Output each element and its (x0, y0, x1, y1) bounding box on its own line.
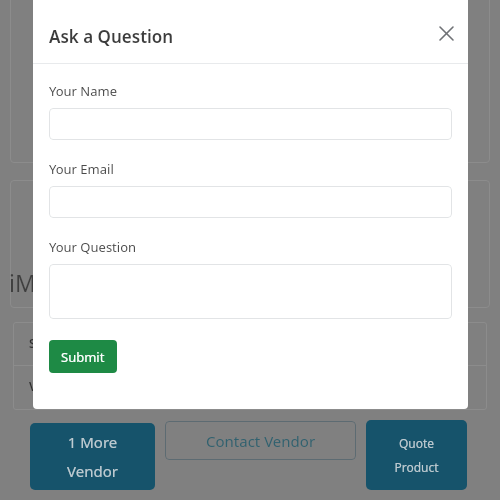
staticText: 1 More Vendor (67, 432, 118, 481)
staticText: S (29, 335, 36, 351)
button[interactable]: Submit (49, 340, 117, 373)
staticText: Your Email (49, 160, 114, 178)
staticText: Your Name (49, 82, 118, 100)
staticText: Quote Product (394, 435, 439, 475)
staticText: V (29, 378, 37, 394)
button[interactable] (49, 108, 452, 140)
staticText: Ask a Question (49, 25, 174, 48)
staticText: Submit (61, 348, 105, 366)
staticText: Your Question (49, 238, 137, 256)
button[interactable] (49, 186, 452, 218)
staticText: iM (9, 267, 36, 298)
button[interactable]: Close (431, 18, 461, 48)
button[interactable] (49, 264, 452, 319)
staticText: Contact Vendor (206, 431, 316, 451)
button[interactable]: 1 More Vendor (30, 423, 155, 490)
button[interactable]: Contact Vendor (165, 421, 356, 460)
button[interactable]: Quote Product (366, 420, 467, 490)
